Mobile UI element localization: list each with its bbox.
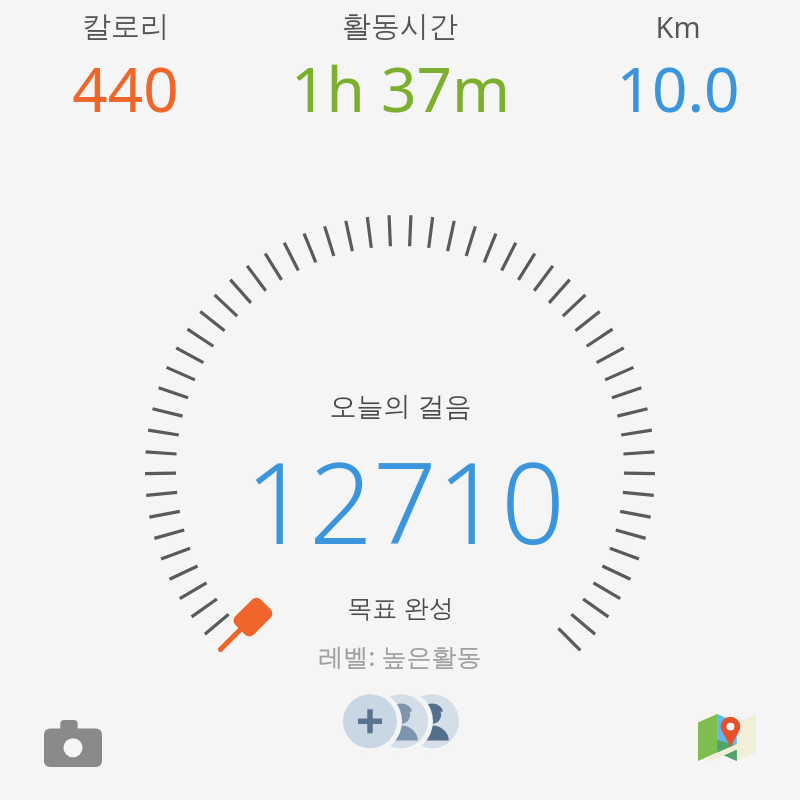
staticText: 목표 완성 — [347, 590, 454, 624]
staticText: 10.0 — [616, 46, 740, 130]
button[interactable]: Camera — [40, 712, 106, 774]
staticText: 활동시간 — [342, 8, 458, 45]
staticText: 오늘의 걸음 — [329, 387, 472, 424]
staticText: 레벨: 높은활동 — [318, 639, 482, 673]
staticText: 12710 — [245, 424, 565, 577]
staticText: Km — [655, 7, 701, 46]
staticText: 440 — [72, 46, 179, 130]
staticText: 1h 37m — [291, 46, 510, 130]
button[interactable]: Map — [694, 706, 760, 768]
staticText: 칼로리 — [82, 8, 169, 45]
button[interactable]: Friends — [340, 694, 462, 752]
